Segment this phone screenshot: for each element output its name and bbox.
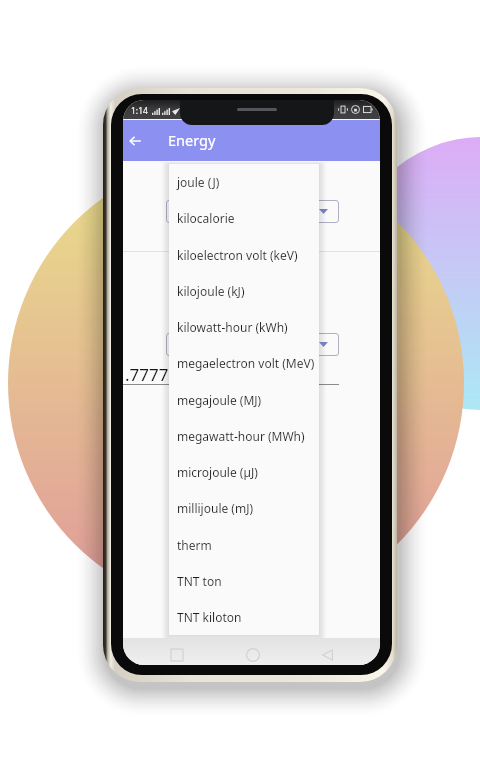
button[interactable]: Back: [314, 641, 341, 665]
button[interactable]: megawatt-hour (MWh): [169, 418, 319, 454]
button[interactable]: kiloelectron volt (keV): [169, 237, 319, 273]
button[interactable]: megajoule (MJ): [169, 382, 319, 418]
staticText: microjoule (µJ): [177, 464, 258, 480]
staticText: kilocalorie: [177, 210, 235, 226]
staticText: TNT ton: [177, 573, 222, 589]
staticText: joule (J): [177, 174, 220, 190]
button[interactable]: Select unit: [166, 200, 339, 223]
staticText: therm: [177, 537, 212, 553]
staticText: kilojoule (kJ): [177, 283, 245, 299]
staticText: .777777: [125, 363, 188, 386]
button[interactable]: kilowatt-hour (kWh): [169, 309, 319, 345]
button[interactable]: kilojoule (kJ): [169, 273, 319, 309]
button[interactable]: Home: [239, 641, 266, 665]
staticText: megaelectron volt (MeV): [177, 355, 315, 371]
button[interactable]: TNT kiloton: [169, 599, 319, 635]
button[interactable]: microjoule (µJ): [169, 454, 319, 490]
staticText: Energy: [168, 130, 216, 150]
button[interactable]: TNT ton: [169, 563, 319, 599]
staticText: kiloelectron volt (keV): [177, 247, 298, 263]
button[interactable]: therm: [169, 527, 319, 563]
button[interactable]: Back: [123, 128, 146, 153]
staticText: megawatt-hour (MWh): [177, 428, 305, 444]
button[interactable]: megaelectron volt (MeV): [169, 345, 319, 381]
button[interactable]: kilocalorie: [169, 200, 319, 236]
staticText: megajoule (MJ): [177, 392, 262, 408]
button[interactable]: Recents: [163, 641, 190, 665]
button[interactable]: joule (J): [169, 164, 319, 200]
staticText: TNT kiloton: [177, 609, 242, 625]
button[interactable]: millijoule (mJ): [169, 490, 319, 526]
button[interactable]: Select unit: [166, 333, 339, 356]
staticText: millijoule (mJ): [177, 500, 254, 516]
staticText: kilowatt-hour (kWh): [177, 319, 288, 335]
staticText: 1:14: [131, 105, 148, 117]
